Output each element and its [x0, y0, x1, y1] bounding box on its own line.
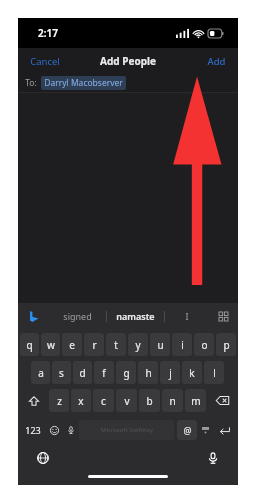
staticText: 2:17: [38, 26, 58, 40]
button[interactable]: To:: [18, 74, 238, 92]
staticText: 123: [25, 424, 41, 436]
staticText: Microsoft SwiftKey: [101, 426, 153, 434]
button[interactable]: r: [84, 333, 104, 356]
staticText: p: [223, 338, 230, 352]
staticText: j: [169, 366, 172, 380]
button[interactable]: s: [52, 361, 71, 384]
staticText: v: [124, 394, 130, 408]
button[interactable]: Cancel: [18, 51, 72, 72]
button[interactable]: Microsoft SwiftKey: [79, 420, 174, 440]
button[interactable]: g: [116, 361, 136, 384]
button[interactable]: @: [177, 420, 197, 440]
staticText: s: [59, 366, 64, 380]
staticText: a: [38, 366, 44, 380]
button[interactable]: h: [138, 361, 158, 384]
staticText: k: [189, 366, 195, 380]
staticText: signed: [63, 310, 92, 322]
button[interactable]: Dictation: [202, 447, 224, 469]
staticText: u: [157, 338, 164, 352]
button[interactable]: y: [128, 333, 148, 356]
staticText: f: [102, 366, 106, 380]
button[interactable]: q: [20, 333, 39, 356]
button[interactable]: a: [31, 361, 50, 384]
button[interactable]: o: [194, 333, 214, 356]
staticText: d: [79, 366, 86, 380]
button[interactable]: namaste: [107, 303, 164, 329]
staticText: b: [146, 394, 153, 408]
button[interactable]: Change keyboard language: [32, 447, 54, 469]
button[interactable]: Microsoft SwiftKey: [18, 303, 48, 329]
staticText: Darryl Macobserver: [44, 77, 123, 89]
button[interactable]: Shift: [20, 389, 47, 412]
button[interactable]: signed: [48, 303, 106, 329]
button[interactable]: Voice input: [63, 417, 79, 443]
staticText: w: [47, 338, 55, 352]
button[interactable]: x: [71, 389, 91, 412]
button[interactable]: I: [165, 303, 208, 329]
staticText: e: [69, 338, 75, 352]
staticText: t: [114, 338, 118, 352]
staticText: Add People: [100, 54, 156, 68]
button[interactable]: Emoji: [45, 417, 63, 443]
button[interactable]: c: [93, 389, 114, 412]
staticText: @: [183, 424, 192, 436]
button[interactable]: i: [172, 333, 192, 356]
staticText: g: [123, 366, 130, 380]
staticText: o: [201, 338, 208, 352]
staticText: c: [101, 394, 106, 408]
button[interactable]: j: [160, 361, 180, 384]
staticText: y: [135, 338, 141, 352]
button[interactable]: Sticker: [197, 417, 213, 443]
button[interactable]: d: [73, 361, 92, 384]
button[interactable]: Return: [213, 417, 235, 443]
staticText: q: [26, 338, 33, 352]
staticText: x: [78, 394, 84, 408]
button[interactable]: 123: [21, 417, 45, 443]
staticText: z: [57, 394, 62, 408]
button[interactable]: z: [49, 389, 69, 412]
button[interactable]: e: [62, 333, 82, 356]
staticText: l: [213, 366, 216, 380]
button[interactable]: f: [94, 361, 114, 384]
button[interactable]: m: [185, 389, 206, 412]
button[interactable]: l: [204, 361, 224, 384]
staticText: i: [181, 338, 184, 352]
button[interactable]: k: [182, 361, 202, 384]
button[interactable]: w: [41, 333, 60, 356]
button[interactable]: u: [150, 333, 170, 356]
button[interactable]: t: [106, 333, 126, 356]
button[interactable]: b: [139, 389, 160, 412]
button[interactable]: v: [116, 389, 137, 412]
button[interactable]: n: [162, 389, 183, 412]
button[interactable]: Keyboard menu: [208, 303, 238, 329]
staticText: r: [92, 338, 97, 352]
staticText: Add: [207, 55, 226, 68]
staticText: To:: [25, 77, 37, 89]
staticText: m: [191, 394, 201, 408]
staticText: Cancel: [30, 55, 60, 68]
button[interactable]: Backspace: [208, 389, 236, 412]
staticText: h: [145, 366, 152, 380]
button[interactable]: Add: [195, 51, 238, 72]
staticText: namaste: [116, 310, 155, 322]
staticText: I: [185, 310, 189, 322]
staticText: n: [169, 394, 176, 408]
button[interactable]: p: [216, 333, 236, 356]
